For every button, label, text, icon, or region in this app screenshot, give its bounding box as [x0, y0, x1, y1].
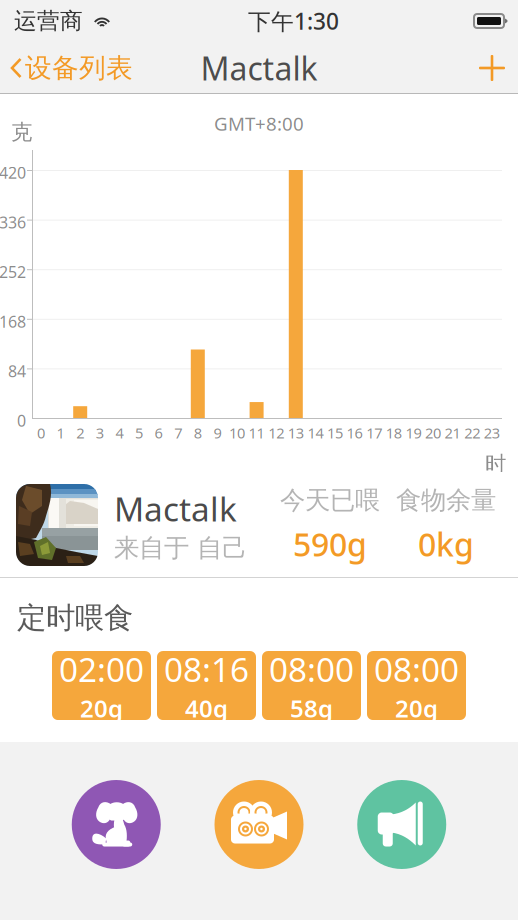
staticText: 5 [135, 423, 143, 442]
staticText: 08:00 [374, 647, 459, 691]
staticText: 设备列表 [25, 52, 133, 84]
staticText: 420 [0, 162, 26, 183]
button[interactable]: 08:00 [367, 651, 466, 720]
staticText: 0kg [418, 523, 474, 565]
staticText: 20 [425, 423, 441, 442]
staticText: 21 [445, 423, 461, 442]
staticText: 02:00 [59, 647, 144, 691]
button[interactable]: 08:00 [262, 651, 361, 720]
button[interactable]: Add [466, 42, 518, 94]
staticText: 168 [0, 311, 26, 332]
staticText: 10 [229, 423, 245, 442]
staticText: 08:16 [164, 647, 249, 691]
button[interactable]: Camera [214, 780, 303, 869]
staticText: 08:00 [269, 647, 354, 691]
staticText: 3 [96, 423, 104, 442]
staticText: 1 [57, 423, 65, 442]
staticText: 14 [307, 423, 323, 442]
staticText: 0 [37, 423, 45, 442]
staticText: 定时喂食 [17, 600, 133, 636]
staticText: GMT+8:00 [214, 111, 304, 136]
staticText: 食物余量 [396, 485, 496, 516]
staticText: 252 [0, 261, 26, 282]
staticText: Mactalk [200, 47, 317, 89]
staticText: 84 [8, 360, 26, 382]
staticText: 12 [268, 423, 284, 442]
staticText: 下午1:30 [248, 6, 339, 36]
staticText: 20g [80, 692, 123, 724]
button[interactable]: Pet profile [72, 780, 161, 869]
staticText: 58g [290, 692, 333, 724]
staticText: 18 [386, 423, 402, 442]
button[interactable]: 02:00 [52, 651, 151, 720]
staticText: 13 [288, 423, 304, 442]
staticText: 2 [76, 423, 84, 442]
staticText: 590g [293, 523, 367, 565]
button[interactable]: Voice message [357, 780, 446, 869]
staticText: 20g [395, 692, 438, 724]
staticText: 4 [115, 423, 123, 442]
staticText: 17 [366, 423, 382, 442]
staticText: 7 [174, 423, 182, 442]
staticText: 19 [405, 423, 421, 442]
button[interactable]: 设备列表 [0, 42, 141, 94]
staticText: 9 [213, 423, 221, 442]
button[interactable]: 08:16 [157, 651, 256, 720]
staticText: 336 [0, 212, 26, 233]
staticText: 23 [484, 423, 500, 442]
staticText: 15 [327, 423, 343, 442]
staticText: 运营商 [14, 7, 83, 35]
staticText: 克 [11, 119, 32, 145]
staticText: 时 [485, 451, 506, 477]
staticText: 6 [155, 423, 163, 442]
staticText: 40g [185, 692, 228, 724]
staticText: 今天已喂 [280, 485, 380, 516]
staticText: 8 [194, 423, 202, 442]
staticText: 16 [347, 423, 363, 442]
staticText: 11 [249, 423, 265, 442]
staticText: 来自于 自己 [114, 533, 247, 564]
staticText: Mactalk [114, 486, 237, 531]
staticText: 22 [464, 423, 480, 442]
staticText: 0 [17, 410, 26, 431]
